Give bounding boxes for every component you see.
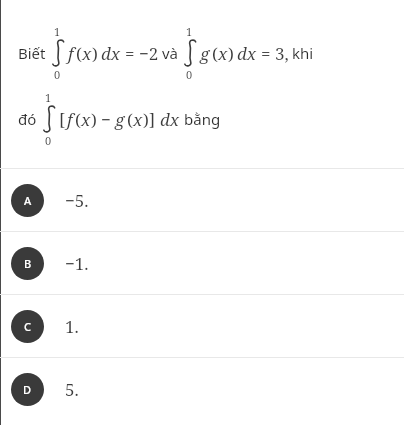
staticText: g: [200, 42, 210, 65]
staticText: =: [261, 42, 271, 65]
staticText: A: [24, 193, 32, 208]
staticText: 5.: [65, 378, 79, 401]
staticText: −: [101, 108, 111, 131]
staticText: f: [68, 42, 74, 65]
staticText: 3,: [275, 42, 289, 65]
staticText: dx: [160, 108, 180, 131]
staticText: dx: [101, 42, 121, 65]
staticText: Biết: [18, 43, 50, 63]
staticText: [: [59, 108, 66, 131]
staticText: (: [76, 42, 82, 65]
staticText: (: [127, 108, 133, 131]
staticText: ): [143, 108, 149, 131]
button[interactable]: D: [0, 358, 404, 420]
staticText: 0: [54, 67, 61, 82]
staticText: ): [92, 42, 98, 65]
staticText: dx: [237, 42, 257, 65]
staticText: −2: [139, 42, 159, 65]
staticText: C: [24, 319, 31, 334]
staticText: 1: [54, 24, 61, 39]
staticText: bằng: [184, 109, 221, 129]
staticText: −1.: [65, 252, 89, 275]
staticText: khi: [292, 43, 314, 63]
staticText: 1: [45, 90, 52, 105]
staticText: 0: [45, 133, 52, 148]
staticText: (: [212, 42, 218, 65]
staticText: x: [218, 42, 228, 65]
staticText: =: [125, 42, 135, 65]
staticText: đó: [18, 109, 41, 129]
staticText: (: [75, 108, 81, 131]
staticText: f: [67, 108, 73, 131]
staticText: 1.: [65, 315, 79, 338]
button[interactable]: C: [0, 295, 404, 357]
staticText: B: [24, 256, 32, 271]
button[interactable]: A: [0, 169, 404, 231]
staticText: và: [162, 43, 182, 63]
staticText: D: [23, 382, 32, 397]
staticText: x: [82, 42, 92, 65]
staticText: x: [133, 108, 143, 131]
staticText: ): [91, 108, 97, 131]
staticText: x: [81, 108, 91, 131]
staticText: 1: [186, 24, 193, 39]
staticText: −5.: [65, 189, 89, 212]
staticText: 0: [186, 67, 193, 82]
staticText: ): [228, 42, 234, 65]
staticText: ]: [149, 108, 156, 131]
button[interactable]: B: [0, 232, 404, 294]
staticText: g: [115, 108, 125, 131]
